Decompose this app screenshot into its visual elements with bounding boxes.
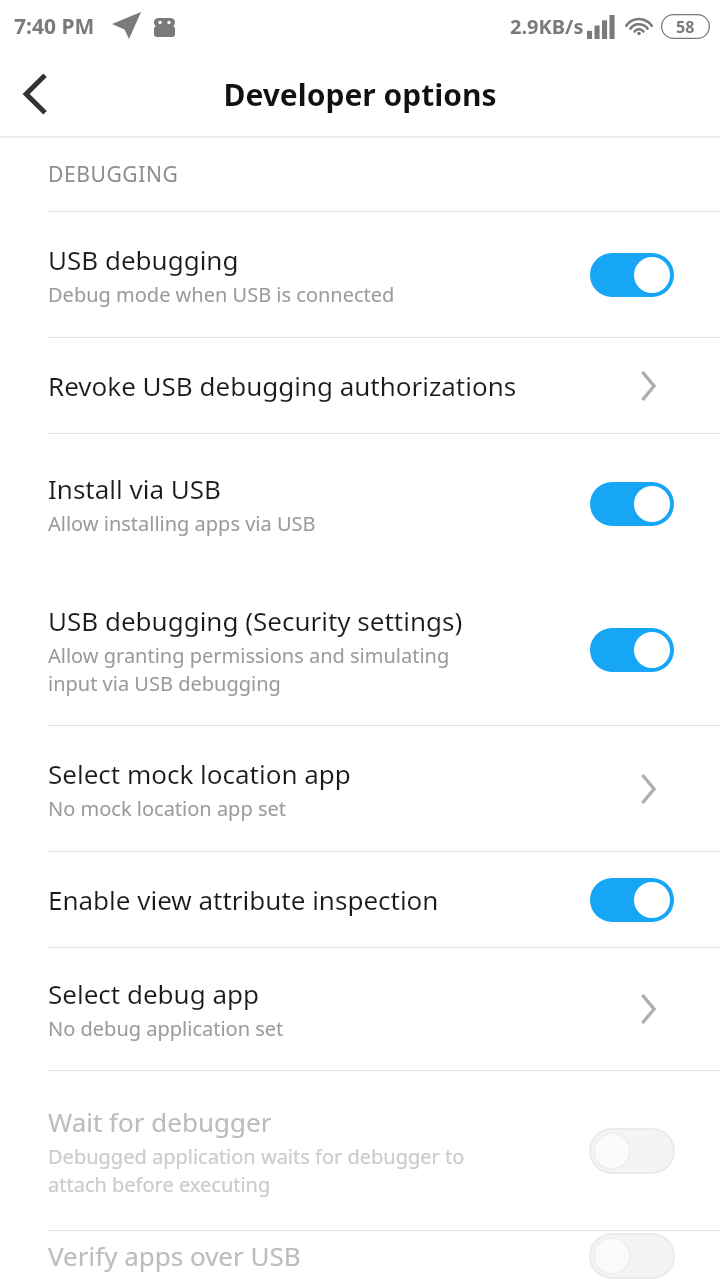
- staticText: No debug application set: [48, 1015, 284, 1042]
- button[interactable]: Open: [622, 983, 674, 1035]
- staticText: Debug mode when USB is connected: [48, 281, 395, 308]
- button[interactable]: Toggle off: [590, 1234, 674, 1278]
- staticText: Select debug app: [48, 976, 259, 1011]
- button[interactable]: Toggle on: [590, 878, 674, 922]
- staticText: Debugged application waits for debugger …: [48, 1143, 465, 1198]
- button[interactable]: Enable view attribute inspection: [0, 852, 720, 947]
- button[interactable]: Toggle off: [590, 1129, 674, 1173]
- button[interactable]: Open: [622, 763, 674, 815]
- staticText: Allow installing apps via USB: [48, 510, 316, 537]
- staticText: Enable view attribute inspection: [48, 882, 439, 917]
- staticText: USB debugging (Security settings): [48, 603, 463, 638]
- staticText: Select mock location app: [48, 756, 351, 791]
- button[interactable]: Select debug app: [0, 948, 720, 1070]
- button[interactable]: Revoke USB debugging authorizations: [0, 338, 720, 433]
- staticText: USB debugging: [48, 242, 239, 277]
- button[interactable]: Verify apps over USB: [0, 1231, 720, 1280]
- button[interactable]: Toggle on: [590, 628, 674, 672]
- staticText: Developer options: [223, 74, 497, 115]
- button[interactable]: Toggle on: [590, 482, 674, 526]
- staticText: 58: [676, 16, 695, 38]
- staticText: Wait for debugger: [48, 1104, 272, 1139]
- staticText: DEBUGGING: [48, 160, 179, 189]
- button[interactable]: Back: [0, 58, 72, 130]
- staticText: Install via USB: [48, 471, 221, 506]
- staticText: No mock location app set: [48, 795, 286, 822]
- button[interactable]: Wait for debugger: [0, 1071, 720, 1230]
- button[interactable]: USB debugging: [0, 212, 720, 337]
- button[interactable]: Install via USB: [0, 434, 720, 574]
- staticText: Verify apps over USB: [48, 1238, 301, 1273]
- button[interactable]: USB debugging (Security settings): [0, 574, 720, 725]
- staticText: 7:40 PM: [14, 12, 95, 41]
- button[interactable]: Select mock location app: [0, 726, 720, 851]
- button[interactable]: Toggle on: [590, 253, 674, 297]
- button[interactable]: Open: [622, 360, 674, 412]
- staticText: 2.9KB/s: [510, 13, 584, 40]
- staticText: Revoke USB debugging authorizations: [48, 368, 517, 403]
- staticText: Allow granting permissions and simulatin…: [48, 642, 450, 697]
